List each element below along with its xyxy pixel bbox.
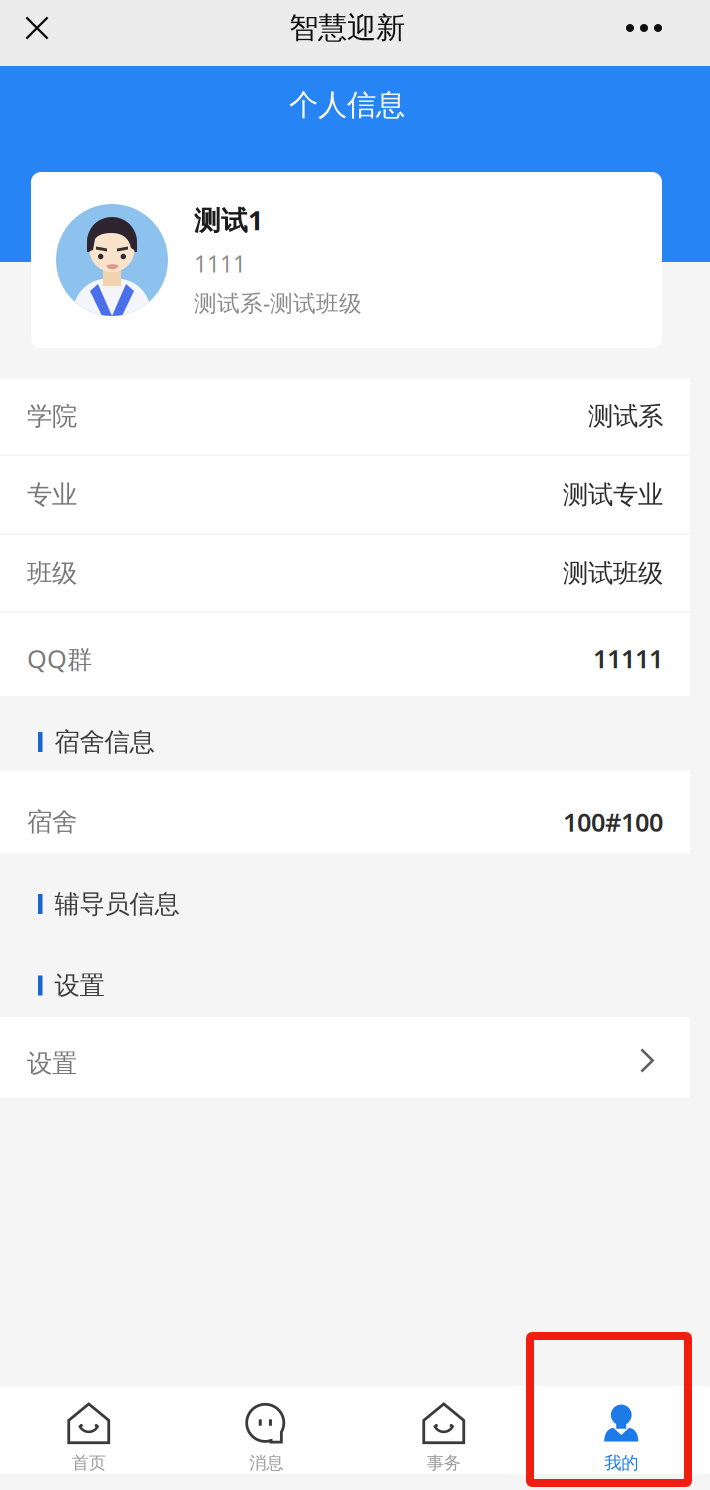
staticText: 个人信息 [289, 87, 405, 123]
staticText: 事务 [427, 1452, 461, 1474]
button[interactable]: 设置 [0, 1017, 690, 1098]
staticText: 测试系-测试班级 [194, 288, 362, 318]
staticText: 班级 [27, 558, 77, 589]
staticText: 学院 [27, 401, 77, 432]
staticText: 设置 [27, 1048, 77, 1079]
button[interactable]: 首页 [0, 1386, 177, 1474]
staticText: 测试班级 [563, 558, 663, 589]
staticText: 宿舍信息 [54, 726, 154, 757]
staticText: 我的 [604, 1452, 638, 1474]
staticText: 100#100 [563, 805, 663, 839]
staticText: 测试系 [588, 401, 663, 432]
staticText: 11111 [593, 642, 663, 675]
staticText: 1111 [194, 249, 246, 279]
staticText: 设置 [54, 970, 104, 1001]
button[interactable]: 我的 [532, 1386, 710, 1474]
staticText: 宿舍 [27, 806, 77, 837]
staticText: QQ群 [27, 642, 92, 675]
button[interactable]: 更多 [600, 0, 688, 66]
staticText: 测试1 [194, 202, 263, 238]
staticText: 消息 [249, 1452, 283, 1474]
staticText: 测试专业 [563, 479, 663, 510]
button[interactable]: 消息 [177, 1386, 355, 1474]
button[interactable]: 关闭 [0, 0, 74, 66]
button[interactable]: 事务 [355, 1386, 532, 1474]
staticText: 专业 [27, 479, 77, 510]
staticText: 辅导员信息 [54, 888, 179, 919]
staticText: 首页 [72, 1452, 106, 1474]
staticText: 智慧迎新 [289, 10, 405, 46]
